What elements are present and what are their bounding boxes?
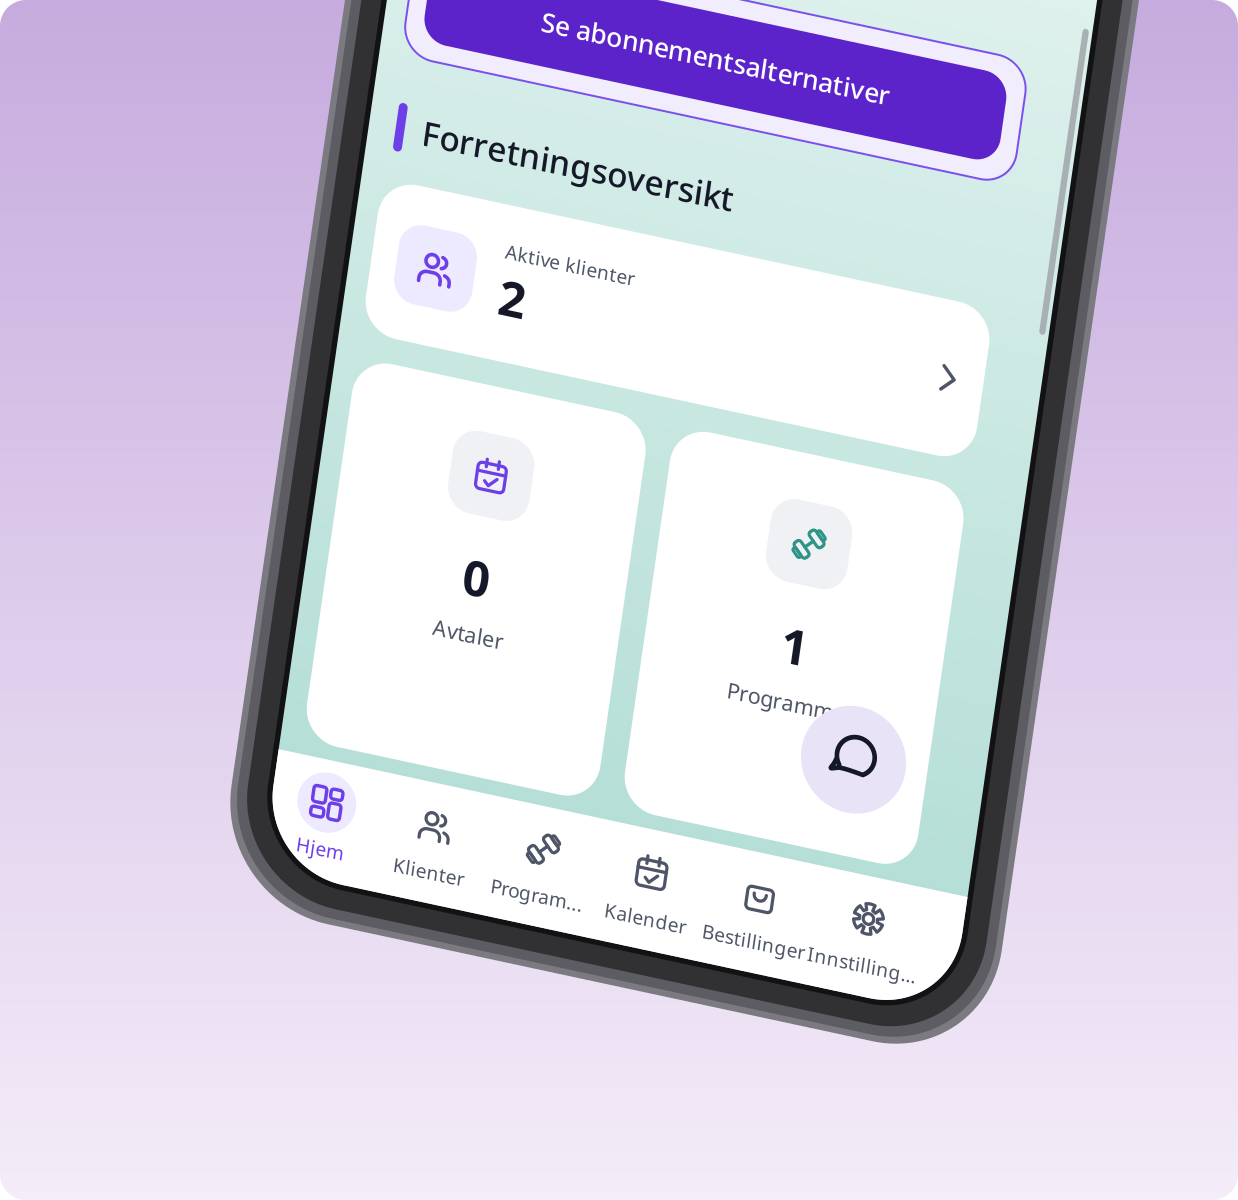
staticText: Programme	[264, 708, 331, 724]
button[interactable]: Bestillinger	[268, 803, 330, 857]
button[interactable]: Se abonnementsalternativer	[23, 340, 413, 410]
button[interactable]: Chat	[310, 710, 369, 769]
staticText: Bestillinger	[270, 843, 328, 857]
button[interactable]: Innstilling...	[330, 803, 391, 857]
button[interactable]: 0	[35, 579, 201, 793]
button[interactable]: Kalender	[207, 803, 268, 857]
button[interactable]: Aktive klienter	[23, 479, 413, 565]
staticText: 1	[290, 667, 305, 702]
staticText: Se abonnementsalternativer	[109, 365, 306, 385]
staticText: Innstilling...	[330, 843, 391, 857]
button[interactable]: 1	[215, 579, 381, 793]
staticText: Kalender	[215, 843, 261, 857]
